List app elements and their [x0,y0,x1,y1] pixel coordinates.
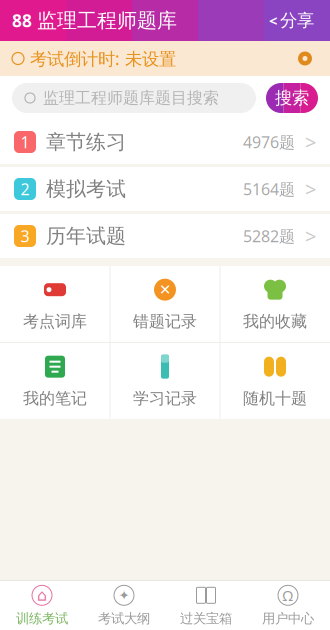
staticText: < [269,11,277,30]
staticText: 错题记录 [133,312,197,331]
staticText: 分享 [280,10,314,31]
staticText: 3 [20,225,29,247]
button[interactable]: 设置 [292,45,318,71]
staticText: 学习记录 [133,389,197,408]
button[interactable]: Ω [247,581,329,630]
staticText: 历年试题 [46,224,126,248]
button[interactable]: 过关宝箱 [165,581,247,630]
button[interactable]: 3 [0,214,330,258]
button[interactable]: 我的笔记 [0,343,109,419]
staticText: > [305,129,316,155]
button[interactable]: < [265,4,318,37]
staticText: 过关宝箱 [180,610,232,627]
button[interactable]: 我的收藏 [220,266,329,342]
staticText: 考试大纲 [98,610,150,627]
button[interactable]: 搜索 [266,83,318,113]
staticText: ⌂ [37,586,47,604]
staticText: 章节练习 [46,130,126,154]
staticText: 监理工程师题库题目搜索 [43,88,219,108]
staticText: Ω [282,586,293,605]
staticText: 2 [20,178,29,200]
staticText: 考试倒计时: 未设置 [30,47,176,70]
button[interactable]: 监理工程师题库题目搜索 [12,83,256,113]
staticText: 5282题 [243,225,295,247]
staticText: > [305,223,316,249]
button[interactable]: ⌂ [1,581,83,630]
staticText: 考点词库 [23,312,87,331]
staticText: 监理工程师题库 [37,8,177,33]
staticText: 用户中心 [262,610,314,627]
button[interactable]: 1 [0,120,330,164]
staticText: 我的笔记 [23,389,87,408]
staticText: > [305,176,316,202]
staticText: 训练考试 [16,610,68,627]
button[interactable]: 学习记录 [110,343,219,419]
staticText: 4976题 [243,131,295,153]
staticText: 模拟考试 [46,177,126,201]
staticText: 1 [20,131,29,153]
staticText: 我的收藏 [243,312,307,331]
staticText: 搜索 [275,87,309,109]
staticText: ✕ [159,281,171,298]
button[interactable]: 2 [0,167,330,211]
button[interactable]: 随机十题 [220,343,329,419]
staticText: 88 [12,9,32,32]
button[interactable]: 考点词库 [0,266,109,342]
staticText: 5164题 [243,178,295,200]
button[interactable]: ✦ [83,581,165,630]
button[interactable]: ✕ [110,266,219,342]
staticText: 随机十题 [243,389,307,408]
staticText: ✦ [118,588,129,603]
